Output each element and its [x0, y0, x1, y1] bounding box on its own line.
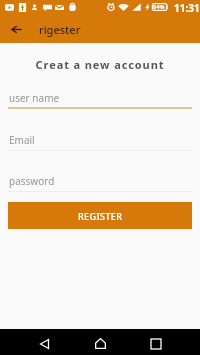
button[interactable]: Home — [86, 330, 115, 355]
button[interactable]: REGISTER — [8, 202, 192, 229]
staticText: REGISTER — [78, 210, 123, 222]
staticText: Creat a new account — [0, 57, 200, 72]
staticText: 11:31 — [174, 1, 200, 15]
staticText: password — [9, 174, 55, 188]
button[interactable]: Back — [30, 331, 59, 355]
button[interactable]: Back — [1, 16, 31, 43]
button[interactable]: Recent apps — [141, 331, 170, 355]
staticText: rigester — [39, 22, 81, 37]
staticText: user name — [9, 91, 60, 105]
staticText: Email — [9, 133, 35, 147]
staticText: 64% — [153, 3, 165, 11]
